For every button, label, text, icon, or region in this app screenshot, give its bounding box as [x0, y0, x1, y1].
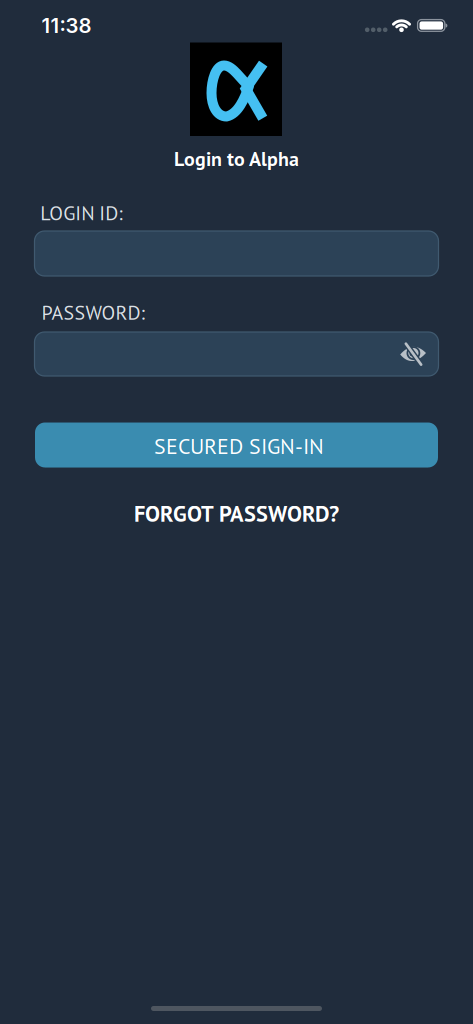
- staticText: SECURED SIGN-IN: [154, 432, 324, 460]
- button[interactable]: Password: [34, 332, 438, 376]
- staticText: FORGOT PASSWORD?: [134, 499, 339, 528]
- staticText: Login to Alpha: [174, 146, 299, 171]
- staticText: PASSWORD:: [42, 299, 145, 325]
- staticText: LOGIN ID:: [40, 200, 122, 226]
- button[interactable]: Login ID: [34, 231, 438, 276]
- staticText: 11:38: [41, 13, 91, 38]
- button[interactable]: SECURED SIGN-IN: [35, 422, 438, 467]
- button[interactable]: Show password: [396, 337, 430, 371]
- button[interactable]: FORGOT PASSWORD?: [134, 499, 339, 528]
